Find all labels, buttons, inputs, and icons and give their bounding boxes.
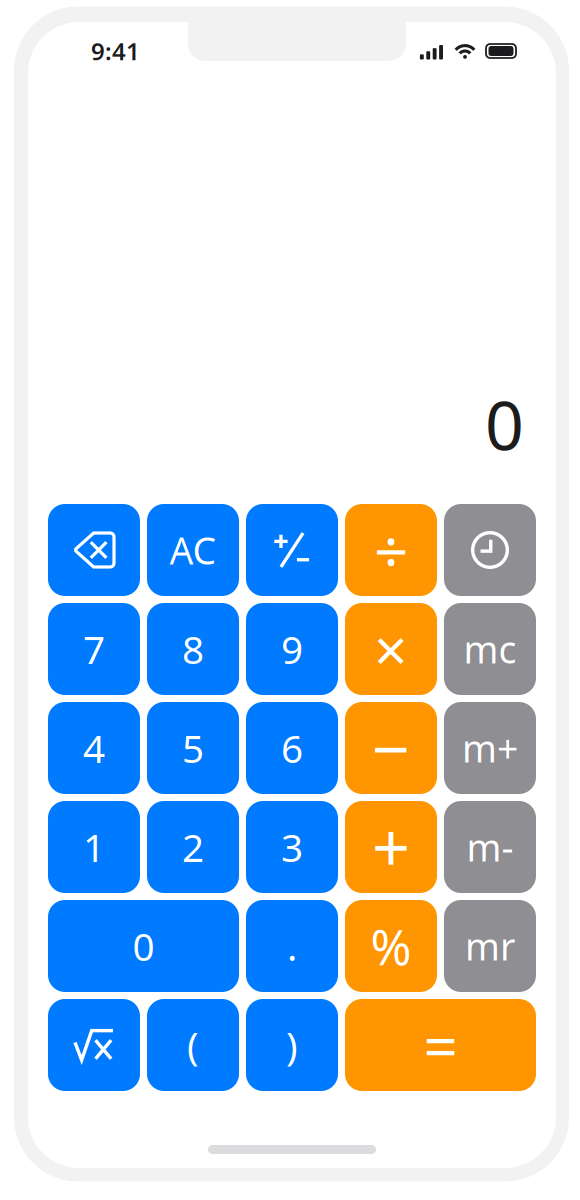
button[interactable]: × [345,603,437,695]
button[interactable]: . [246,900,338,992]
staticText: × [374,610,408,688]
button[interactable]: Toggle sign [246,504,338,596]
staticText: % [370,913,411,979]
staticText: 5 [182,722,204,774]
button[interactable]: 0 [48,900,239,992]
button[interactable]: 7 [48,603,140,695]
staticText: ÷ [374,510,408,590]
staticText: 0 [485,379,524,469]
button[interactable]: 5 [147,702,239,794]
button[interactable]: 2 [147,801,239,893]
staticText: 2 [182,821,204,873]
staticText: 0 [132,920,154,972]
button[interactable]: ÷ [345,504,437,596]
staticText: = [423,1005,457,1085]
staticText: 4 [83,722,105,774]
staticText: 6 [281,722,303,774]
staticText: m- [466,822,513,872]
button[interactable]: 6 [246,702,338,794]
staticText: ) [286,1019,298,1071]
staticText: 9 [281,623,303,675]
button[interactable]: = [345,999,536,1091]
button[interactable]: + [345,801,437,893]
button[interactable]: History [444,504,536,596]
button[interactable]: 9 [246,603,338,695]
staticText: 9:41 [91,35,140,67]
button[interactable]: 8 [147,603,239,695]
staticText: . [287,920,297,972]
staticText: m+ [462,723,518,773]
button[interactable]: mc [444,603,536,695]
button[interactable]: m- [444,801,536,893]
staticText: 1 [83,821,105,873]
button[interactable]: 4 [48,702,140,794]
button[interactable]: Delete [48,504,140,596]
staticText: 3 [281,821,303,873]
staticText: mr [465,921,515,971]
button[interactable]: % [345,900,437,992]
staticText: 7 [83,623,105,675]
staticText: mc [463,624,516,674]
button[interactable]: m+ [444,702,536,794]
button[interactable]: 3 [246,801,338,893]
staticText: ( [187,1019,199,1071]
staticText: AC [169,525,216,575]
button[interactable]: mr [444,900,536,992]
staticText: − [372,704,410,792]
staticText: 8 [182,623,204,675]
button[interactable]: Square root [48,999,140,1091]
button[interactable]: ( [147,999,239,1091]
button[interactable]: 1 [48,801,140,893]
button[interactable]: ) [246,999,338,1091]
button[interactable]: AC [147,504,239,596]
button[interactable]: − [345,702,437,794]
staticText: + [372,803,410,891]
